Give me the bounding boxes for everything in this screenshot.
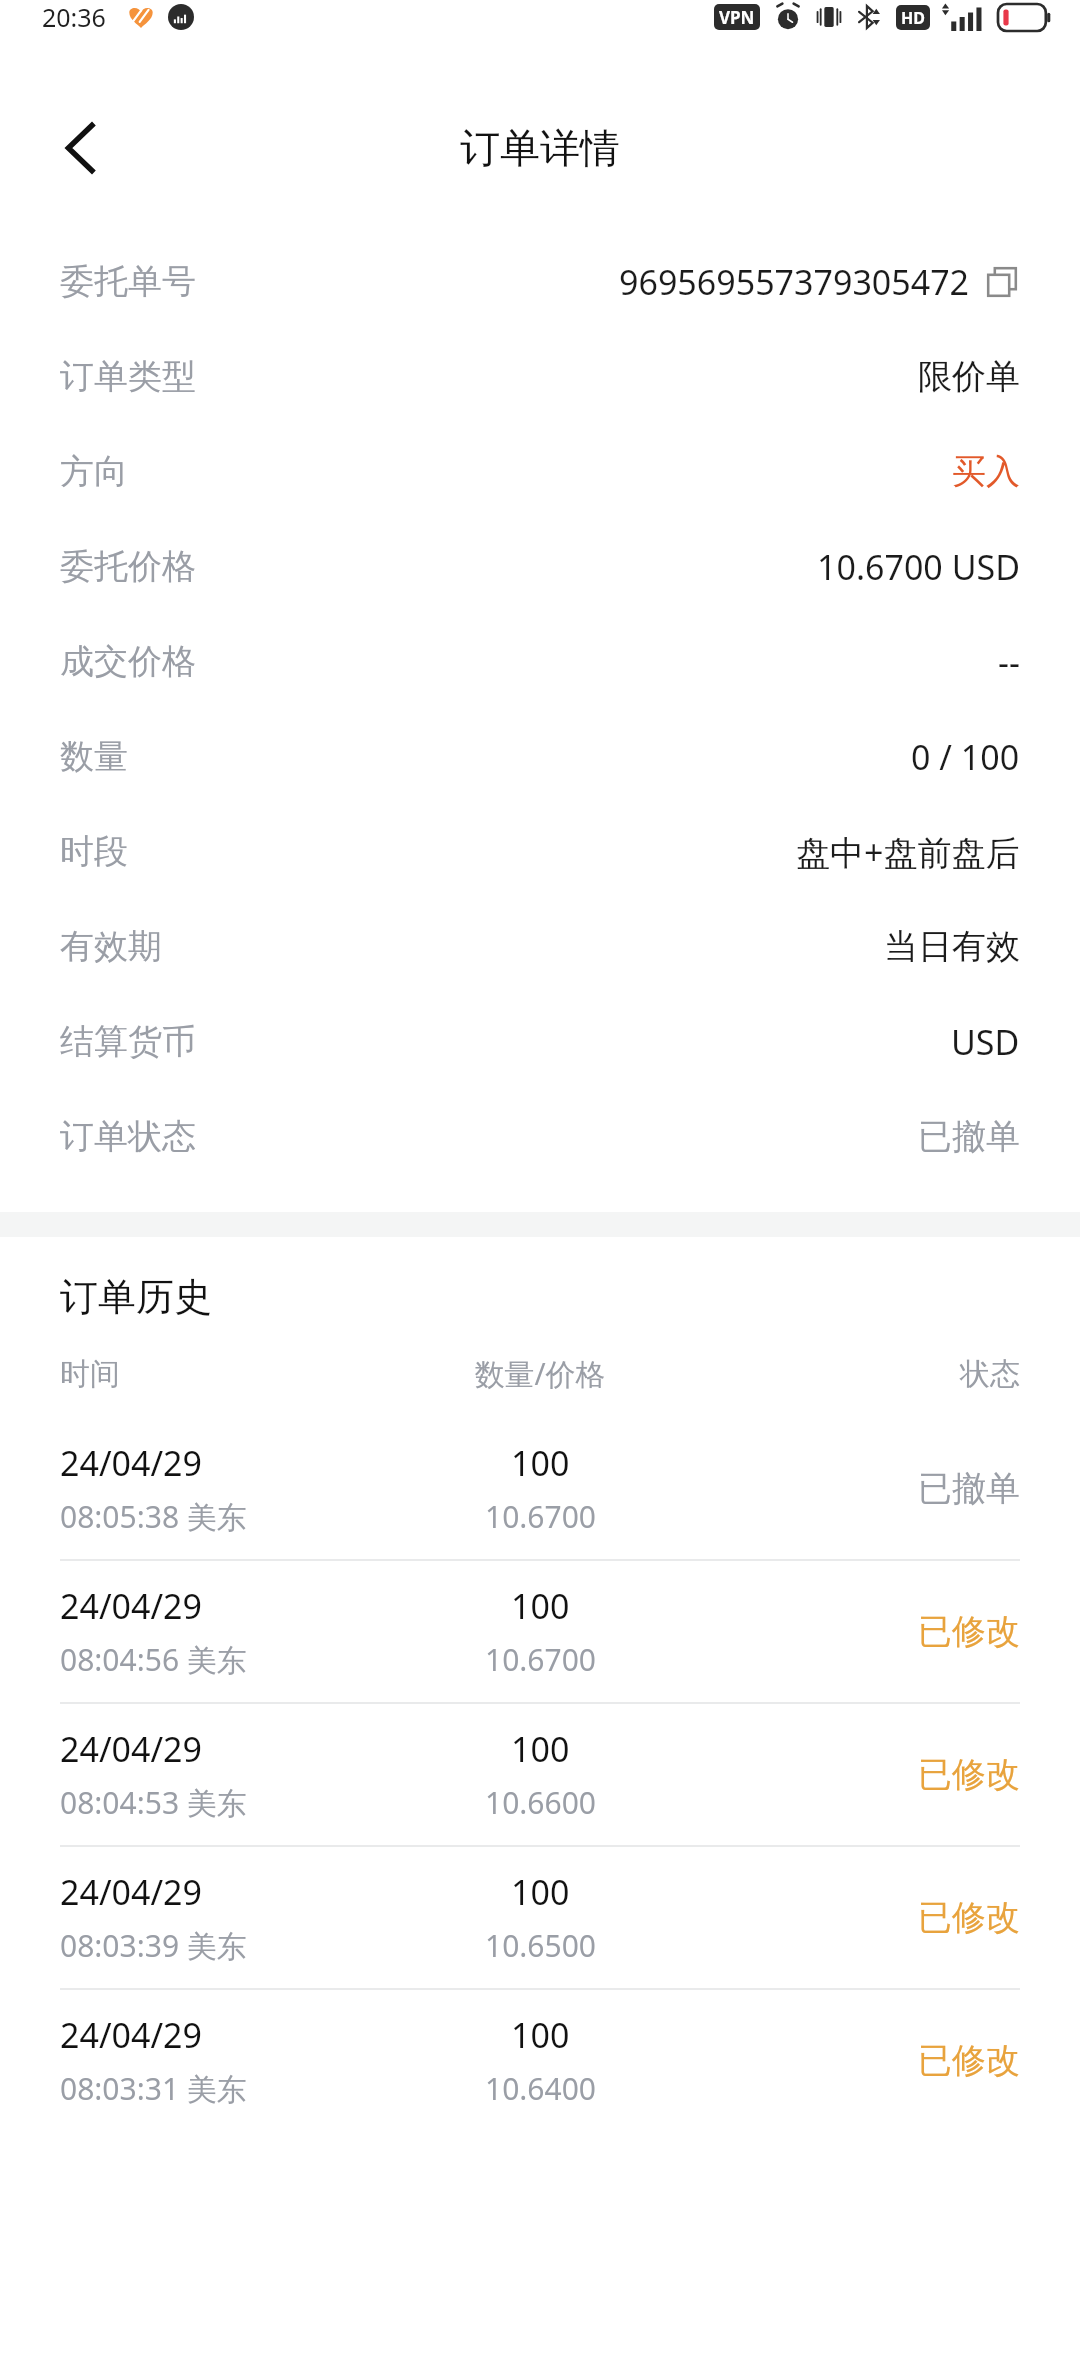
button[interactable]: 24/04/29 xyxy=(0,1561,1080,1702)
staticText: 969569557379305472 xyxy=(619,259,970,305)
staticText: 100 xyxy=(511,1726,570,1772)
staticText: 数量/价格 xyxy=(380,1353,700,1394)
staticText: 已修改 xyxy=(918,1610,1020,1653)
staticText: 订单类型 xyxy=(60,355,196,398)
staticText: 08:05:38 美东 xyxy=(60,1496,247,1537)
staticText: 08:03:39 美东 xyxy=(60,1925,247,1966)
staticText: 状态 xyxy=(700,1355,1020,1393)
staticText: 当日有效 xyxy=(884,925,1020,968)
staticText: 08:04:56 美东 xyxy=(60,1639,247,1680)
staticText: 时段 xyxy=(60,830,128,873)
staticText: 24/04/29 xyxy=(60,1440,202,1486)
staticText: 10.6600 xyxy=(485,1782,596,1823)
staticText: 委托价格 xyxy=(60,545,196,588)
staticText: 成交价格 xyxy=(60,640,196,683)
staticText: -- xyxy=(998,639,1020,685)
staticText: 订单历史 xyxy=(60,1273,212,1321)
staticText: 10.6700 USD xyxy=(817,544,1020,590)
staticText: 0 / 100 xyxy=(911,734,1020,780)
staticText: 委托单号 xyxy=(60,260,196,303)
staticText: 有效期 xyxy=(60,925,162,968)
staticText: 已撤单 xyxy=(918,1115,1020,1158)
staticText: 20:36 xyxy=(42,0,106,34)
staticText: 限价单 xyxy=(918,355,1020,398)
staticText: 10.6700 xyxy=(485,1639,596,1680)
staticText: 方向 xyxy=(60,450,128,493)
staticText: 已修改 xyxy=(918,1896,1020,1939)
button[interactable]: 复制单号 xyxy=(984,264,1020,300)
staticText: 买入 xyxy=(952,450,1020,493)
button[interactable]: 24/04/29 xyxy=(0,1704,1080,1845)
staticText: 24/04/29 xyxy=(60,1869,202,1915)
staticText: 已撤单 xyxy=(918,1467,1020,1510)
staticText: 数量 xyxy=(60,735,128,778)
button[interactable]: 24/04/29 xyxy=(0,1418,1080,1559)
staticText: 100 xyxy=(511,2012,570,2058)
staticText: 已修改 xyxy=(918,2039,1020,2082)
staticText: 08:03:31 美东 xyxy=(60,2068,247,2109)
staticText: 08:04:53 美东 xyxy=(60,1782,247,1823)
staticText: 100 xyxy=(511,1440,570,1486)
staticText: VPN xyxy=(719,6,755,29)
staticText: 10.6400 xyxy=(485,2068,596,2109)
button[interactable]: 24/04/29 xyxy=(0,1847,1080,1988)
staticText: 订单状态 xyxy=(60,1115,196,1158)
staticText: 已修改 xyxy=(918,1753,1020,1796)
staticText: 24/04/29 xyxy=(60,1726,202,1772)
button[interactable]: 返回 xyxy=(46,112,118,184)
staticText: 24/04/29 xyxy=(60,2012,202,2058)
staticText: 订单详情 xyxy=(460,123,620,173)
button[interactable]: 24/04/29 xyxy=(0,1990,1080,2131)
staticText: 24/04/29 xyxy=(60,1583,202,1629)
staticText: 100 xyxy=(511,1583,570,1629)
staticText: HD xyxy=(901,7,925,29)
staticText: 100 xyxy=(511,1869,570,1915)
staticText: 时间 xyxy=(60,1355,380,1393)
staticText: 盘中+盘前盘后 xyxy=(796,829,1020,875)
staticText: 结算货币 xyxy=(60,1020,196,1063)
staticText: USD xyxy=(951,1019,1020,1065)
staticText: 10.6700 xyxy=(485,1496,596,1537)
staticText: 10.6500 xyxy=(485,1925,596,1966)
